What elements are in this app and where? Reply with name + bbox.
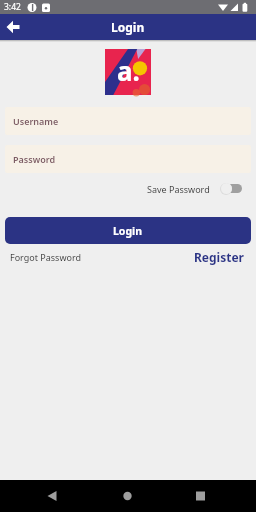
button[interactable]: Username [5,107,251,135]
staticText: Login [113,224,143,238]
button[interactable] [220,182,242,195]
staticText: Forgot Password [10,251,82,263]
button[interactable] [86,480,171,512]
button[interactable]: Forgot Password [10,251,82,263]
staticText: Register [194,249,244,265]
staticText: Password [13,153,56,165]
staticText: 3:42 [4,1,21,13]
button[interactable]: Password [5,145,251,173]
button[interactable] [3,17,23,37]
button[interactable] [171,480,256,512]
button[interactable] [0,480,86,512]
button[interactable]: Register [194,249,244,265]
staticText: Save Password [147,183,210,195]
staticText: Login [111,19,145,35]
staticText: Username [13,115,59,127]
button[interactable]: Login [5,217,251,244]
staticText: a. [117,53,140,88]
